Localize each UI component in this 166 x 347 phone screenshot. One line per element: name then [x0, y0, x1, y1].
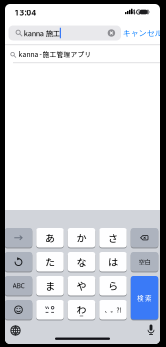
button[interactable]: な	[68, 251, 95, 272]
button[interactable]: クリア	[108, 29, 115, 37]
staticText: 空白	[138, 257, 150, 266]
button[interactable]: ら	[99, 275, 127, 296]
button[interactable]: か	[68, 227, 95, 248]
staticText: ま	[45, 278, 55, 293]
button[interactable]: kanna - 施工管理アプリ	[5, 45, 160, 63]
button[interactable]: は	[99, 251, 127, 272]
button[interactable]: や	[68, 275, 95, 296]
button[interactable]: 絵文字	[5, 299, 32, 320]
staticText: か	[76, 230, 86, 245]
button[interactable]: 削除	[131, 227, 158, 248]
button[interactable]: kanna 施工	[8, 25, 121, 40]
button[interactable]: あ	[36, 227, 64, 248]
button[interactable]: 濁点・半濁点・小文字	[36, 299, 64, 320]
button[interactable]: 検索	[131, 275, 158, 320]
button[interactable]: ま	[36, 275, 64, 296]
staticText: kanna 施工	[24, 28, 60, 38]
staticText: 4G	[132, 7, 141, 16]
staticText: は	[108, 254, 118, 269]
staticText: た	[45, 254, 55, 269]
button[interactable]: 空白	[131, 251, 158, 272]
staticText: な	[76, 254, 86, 269]
button[interactable]: た	[36, 251, 64, 272]
staticText: わ	[76, 302, 86, 316]
button[interactable]: さ	[99, 227, 127, 248]
staticText: や	[76, 278, 86, 293]
staticText: さ	[108, 230, 118, 245]
button[interactable]: やり直し	[5, 251, 32, 272]
staticText: あ	[45, 230, 55, 245]
staticText: kanna - 施工管理アプリ	[18, 49, 91, 59]
staticText: ら	[108, 278, 118, 293]
staticText: ABC	[12, 281, 24, 290]
button[interactable]: キャンセル	[123, 28, 163, 38]
button[interactable]: Next keyboard	[7, 322, 23, 338]
staticText: 、。?!	[104, 305, 121, 314]
button[interactable]: Dictation	[143, 322, 159, 338]
button[interactable]: 、。?!	[99, 299, 127, 320]
button[interactable]: ABC	[5, 275, 32, 296]
staticText: 検索	[137, 293, 152, 303]
button[interactable]: カーソルを進める	[5, 227, 32, 248]
staticText: 13:04	[14, 7, 36, 18]
staticText: キャンセル	[123, 28, 163, 38]
button[interactable]: わ	[68, 299, 95, 320]
